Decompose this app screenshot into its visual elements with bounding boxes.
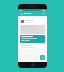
- button[interactable]: [20, 18, 45, 24]
- button[interactable]: [20, 25, 45, 34]
- button[interactable]: Search: [42, 12, 45, 15]
- button[interactable]: Menu: [20, 12, 23, 15]
- button[interactable]: [20, 35, 45, 43]
- button[interactable]: [20, 44, 45, 49]
- button[interactable]: Add: [40, 55, 45, 60]
